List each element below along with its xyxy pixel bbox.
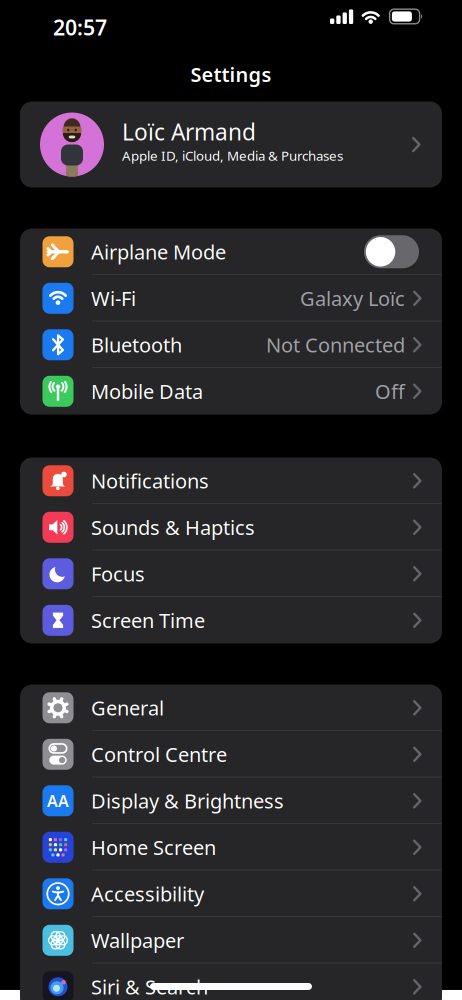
staticText: Not Connected <box>266 331 405 358</box>
button[interactable]: Screen Time <box>20 597 442 643</box>
button[interactable]: Sounds & Haptics <box>20 504 442 550</box>
staticText: Galaxy Loïc <box>300 285 405 312</box>
staticText: Sounds & Haptics <box>91 514 255 541</box>
staticText: Wi-Fi <box>91 285 136 312</box>
staticText: General <box>91 694 164 721</box>
button[interactable]: Loïc Armand <box>20 101 442 187</box>
staticText: Wallpaper <box>91 927 184 954</box>
staticText: Focus <box>91 560 145 587</box>
button[interactable]: Bluetooth <box>20 321 442 368</box>
staticText: Control Centre <box>91 741 227 768</box>
button[interactable]: Accessibility <box>20 870 442 917</box>
staticText: Airplane Mode <box>91 238 226 265</box>
staticText: Display & Brightness <box>91 787 284 814</box>
staticText: Apple ID, iCloud, Media & Purchases <box>122 147 343 164</box>
button[interactable]: Mobile Data <box>20 368 442 414</box>
staticText: Off <box>375 378 405 405</box>
staticText: Notifications <box>91 467 209 494</box>
button[interactable]: Focus <box>20 550 442 597</box>
staticText: 20:57 <box>53 13 107 41</box>
staticText: Settings <box>190 61 271 88</box>
button[interactable]: Wallpaper <box>20 917 442 963</box>
staticText: Bluetooth <box>91 331 182 358</box>
button[interactable]: AA <box>20 777 442 824</box>
staticText: Siri & Search <box>91 973 208 1000</box>
button[interactable]: Wi-Fi <box>20 275 442 321</box>
button[interactable]: Siri & Search <box>20 963 442 1000</box>
button[interactable]: Airplane Mode <box>20 228 442 275</box>
button[interactable]: Home Screen <box>20 824 442 870</box>
staticText: AA <box>47 790 69 811</box>
staticText: Home Screen <box>91 834 216 861</box>
button[interactable]: Control Centre <box>20 731 442 777</box>
staticText: Mobile Data <box>91 378 203 405</box>
staticText: Screen Time <box>91 607 205 634</box>
button[interactable]: Notifications <box>20 457 442 504</box>
staticText: Accessibility <box>91 880 204 907</box>
staticText: Loïc Armand <box>122 117 256 147</box>
button[interactable]: General <box>20 684 442 731</box>
